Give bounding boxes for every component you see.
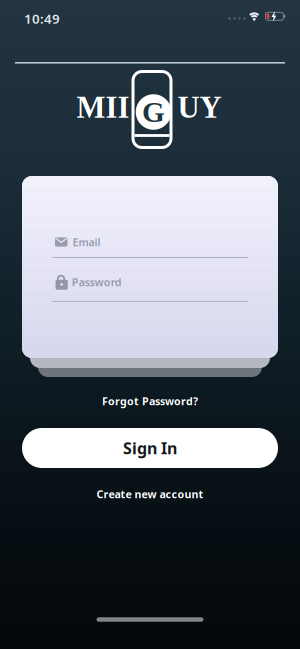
button[interactable]: Email (52, 235, 248, 258)
button[interactable]: Sign In (22, 428, 278, 468)
staticText: Sign In (123, 437, 177, 459)
staticText: 10:49 (24, 10, 60, 27)
button[interactable]: Forgot Password? (102, 394, 198, 408)
button[interactable]: Create new account (96, 487, 203, 501)
staticText: UY (177, 90, 221, 124)
button[interactable]: Password (52, 274, 248, 302)
staticText: MII (76, 90, 129, 124)
staticText: Email (72, 235, 100, 249)
staticText: Password (72, 275, 122, 289)
staticText: Forgot Password? (102, 394, 198, 408)
staticText: Create new account (96, 487, 203, 501)
staticText: G (142, 96, 165, 128)
